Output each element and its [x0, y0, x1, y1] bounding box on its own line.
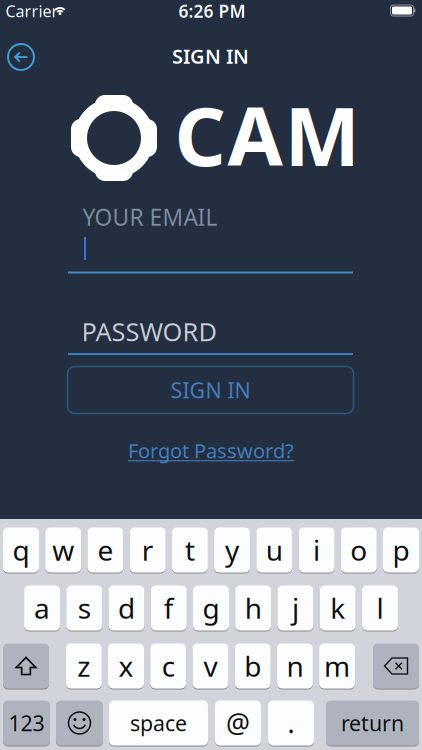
button[interactable]: t: [172, 526, 208, 573]
button[interactable]: k: [320, 584, 356, 631]
staticText: Carrier: [5, 0, 58, 22]
button[interactable]: s: [66, 584, 102, 631]
staticText: space: [130, 709, 187, 737]
button[interactable]: r: [130, 526, 166, 573]
staticText: m: [324, 647, 350, 685]
staticText: return: [341, 709, 404, 737]
staticText: z: [77, 647, 90, 685]
button[interactable]: q: [3, 526, 39, 573]
staticText: o: [350, 531, 367, 569]
staticText: i: [313, 531, 320, 569]
button[interactable]: d: [108, 584, 144, 631]
staticText: b: [244, 647, 261, 685]
button[interactable]: w: [45, 526, 81, 573]
staticText: c: [162, 647, 175, 685]
button[interactable]: return: [326, 699, 419, 746]
staticText: .: [287, 705, 294, 741]
staticText: PASSWORD: [81, 315, 216, 348]
staticText: h: [245, 589, 262, 627]
button[interactable]: f: [151, 584, 187, 631]
staticText: r: [142, 531, 154, 569]
staticText: k: [330, 589, 345, 627]
button[interactable]: Emoji: [56, 699, 103, 746]
button[interactable]: Forgot Password?: [128, 437, 294, 464]
staticText: f: [164, 589, 174, 627]
staticText: w: [52, 531, 74, 569]
staticText: x: [118, 647, 133, 685]
button[interactable]: i: [299, 526, 335, 573]
staticText: t: [185, 531, 195, 569]
staticText: 6:26 PM: [178, 0, 245, 22]
button[interactable]: j: [277, 584, 313, 631]
button[interactable]: Delete: [373, 642, 419, 689]
staticText: p: [392, 531, 409, 569]
button[interactable]: Back: [4, 40, 38, 74]
staticText: y: [225, 531, 239, 569]
staticText: l: [376, 589, 383, 627]
button[interactable]: p: [383, 526, 419, 573]
button[interactable]: u: [256, 526, 292, 573]
staticText: j: [292, 589, 299, 627]
staticText: a: [34, 589, 50, 627]
staticText: YOUR EMAIL: [82, 202, 217, 232]
button[interactable]: n: [277, 642, 313, 689]
staticText: 123: [8, 709, 44, 737]
staticText: n: [286, 647, 303, 685]
staticText: u: [266, 531, 283, 569]
button[interactable]: @: [215, 699, 261, 746]
staticText: CAM: [174, 82, 359, 188]
button[interactable]: l: [362, 584, 398, 631]
staticText: d: [118, 589, 135, 627]
staticText: q: [12, 531, 29, 569]
button[interactable]: v: [192, 642, 228, 689]
button[interactable]: c: [150, 642, 186, 689]
button[interactable]: e: [87, 526, 123, 573]
staticText: SIGN IN: [170, 376, 250, 404]
staticText: e: [97, 531, 113, 569]
button[interactable]: space: [109, 699, 208, 746]
staticText: v: [203, 647, 217, 685]
button[interactable]: o: [341, 526, 377, 573]
button[interactable]: x: [108, 642, 144, 689]
staticText: Forgot Password?: [128, 437, 294, 464]
button[interactable]: m: [319, 642, 355, 689]
staticText: SIGN IN: [172, 43, 249, 69]
button[interactable]: 123: [3, 699, 50, 746]
button[interactable]: h: [235, 584, 271, 631]
button[interactable]: b: [235, 642, 271, 689]
button[interactable]: Shift: [3, 642, 49, 689]
button[interactable]: SIGN IN: [67, 366, 353, 413]
button[interactable]: .: [268, 699, 314, 746]
button[interactable]: g: [193, 584, 229, 631]
staticText: s: [78, 589, 91, 627]
button[interactable]: y: [214, 526, 250, 573]
staticText: @: [226, 705, 250, 741]
button[interactable]: a: [24, 584, 60, 631]
staticText: g: [202, 589, 219, 627]
button[interactable]: z: [66, 642, 102, 689]
